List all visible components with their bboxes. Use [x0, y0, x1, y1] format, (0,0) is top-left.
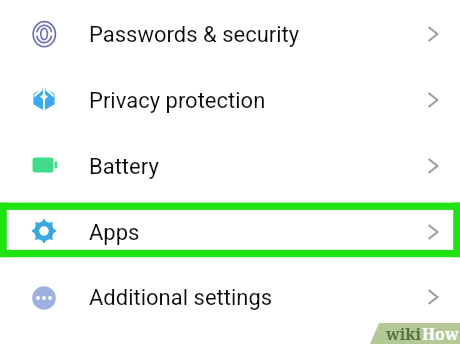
staticText: Privacy protection — [89, 88, 266, 114]
button[interactable]: Apps — [0, 199, 460, 264]
staticText: Battery — [89, 154, 159, 180]
staticText: Apps — [89, 220, 140, 246]
button[interactable]: Additional settings — [0, 264, 460, 330]
button[interactable]: Battery — [0, 133, 460, 199]
other: Open Apps — [422, 221, 444, 243]
other: Open Battery — [422, 155, 444, 177]
button[interactable]: Passwords & security — [0, 1, 460, 67]
staticText: How — [422, 323, 459, 344]
button[interactable]: Privacy protection — [0, 67, 460, 133]
staticText: Additional settings — [89, 285, 273, 311]
other: Open Privacy protection — [422, 89, 444, 111]
other: Open Passwords & security — [422, 23, 444, 45]
other: Open Additional settings — [422, 286, 444, 308]
staticText: Passwords & security — [89, 22, 300, 48]
staticText: wiki — [386, 323, 422, 344]
